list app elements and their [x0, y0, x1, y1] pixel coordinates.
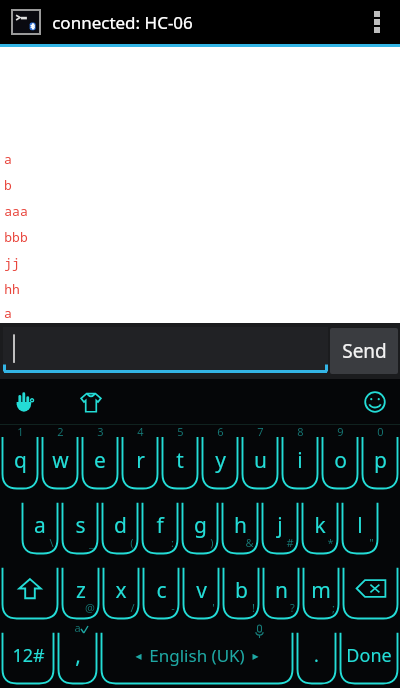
button[interactable]: v: [181, 556, 221, 621]
staticText: z: [76, 576, 86, 605]
staticText: _: [89, 535, 94, 550]
staticText: 4: [137, 424, 144, 439]
staticText: @: [85, 600, 95, 615]
button[interactable]: s: [60, 491, 100, 556]
button[interactable]: c: [141, 556, 181, 621]
button[interactable]: Space: [99, 621, 295, 686]
staticText: k: [314, 511, 326, 540]
button[interactable]: x: [101, 556, 141, 621]
staticText: v: [196, 576, 207, 605]
staticText: 8: [297, 424, 304, 439]
button[interactable]: y: [200, 425, 240, 491]
button[interactable]: b: [221, 556, 261, 621]
button[interactable]: Send: [330, 328, 398, 374]
button[interactable]: hh: [0, 276, 400, 302]
button[interactable]: a: [0, 146, 400, 172]
staticText: b: [4, 176, 12, 194]
button[interactable]: e: [80, 425, 120, 491]
button[interactable]: a: [20, 491, 60, 556]
staticText: 5: [177, 424, 184, 439]
staticText: *: [327, 535, 334, 550]
button[interactable]: Done: [338, 621, 400, 686]
staticText: -: [171, 600, 175, 615]
staticText: b: [235, 576, 248, 605]
button[interactable]: .: [295, 621, 338, 686]
staticText: English (UK): [149, 644, 245, 667]
staticText: !: [252, 600, 255, 615]
button[interactable]: w: [40, 425, 80, 491]
button[interactable]: Theme: [72, 383, 110, 421]
button[interactable]: Gesture input: [6, 383, 44, 421]
staticText: t: [176, 446, 184, 475]
button[interactable]: l: [340, 491, 380, 556]
staticText: ,: [75, 641, 81, 670]
staticText: a: [4, 304, 12, 322]
button[interactable]: Backspace: [341, 556, 400, 621]
staticText: a: [34, 511, 46, 540]
staticText: aaa: [4, 202, 28, 220]
staticText: bbb: [4, 228, 28, 246]
button[interactable]: Emoji: [356, 383, 394, 421]
button[interactable]: m: [301, 556, 341, 621]
staticText: w: [52, 446, 69, 475]
staticText: i: [297, 446, 303, 475]
staticText: r: [136, 446, 145, 475]
button[interactable]: aaa: [0, 198, 400, 224]
staticText: j: [277, 511, 283, 540]
staticText: x: [115, 576, 127, 605]
button[interactable]: jj: [0, 250, 400, 276]
button[interactable]: 12#: [0, 621, 56, 686]
button[interactable]: a: [0, 302, 400, 323]
staticText: e: [94, 446, 106, 475]
staticText: a: [74, 620, 81, 635]
staticText: /: [130, 600, 135, 615]
staticText: s: [75, 511, 86, 540]
button[interactable]: [3, 327, 328, 373]
staticText: g: [194, 511, 207, 540]
staticText: 7: [257, 424, 264, 439]
staticText: h: [234, 511, 247, 540]
button[interactable]: d: [100, 491, 140, 556]
button[interactable]: z: [60, 556, 101, 621]
staticText: (: [130, 535, 134, 550]
button[interactable]: Shift: [0, 556, 60, 621]
button[interactable]: h: [220, 491, 260, 556]
button[interactable]: g: [180, 491, 220, 556]
button[interactable]: ,: [56, 621, 99, 686]
button[interactable]: bbb: [0, 224, 400, 250]
staticText: d: [114, 511, 127, 540]
button[interactable]: b: [0, 172, 400, 198]
button[interactable]: i: [280, 425, 320, 491]
staticText: :: [171, 535, 174, 550]
staticText: hh: [4, 280, 20, 298]
button[interactable]: r: [120, 425, 160, 491]
button[interactable]: f: [140, 491, 180, 556]
staticText: c: [156, 576, 167, 605]
staticText: Done: [346, 643, 392, 668]
staticText: p: [374, 446, 387, 475]
staticText: Send: [342, 338, 387, 364]
button[interactable]: j: [260, 491, 300, 556]
button[interactable]: q: [0, 425, 40, 491]
staticText: ': [212, 600, 215, 615]
staticText: connected: HC-06: [52, 11, 193, 34]
staticText: ?: [290, 600, 295, 615]
button[interactable]: n: [261, 556, 301, 621]
button[interactable]: More options: [360, 0, 394, 44]
button[interactable]: u: [240, 425, 280, 491]
staticText: 12#: [12, 643, 45, 668]
staticText: n: [275, 576, 288, 605]
button[interactable]: o: [320, 425, 360, 491]
staticText: f: [156, 511, 164, 540]
staticText: jj: [4, 254, 20, 272]
staticText: ;: [332, 600, 335, 615]
button[interactable]: t: [160, 425, 200, 491]
staticText: q: [14, 446, 27, 475]
staticText: 1: [17, 424, 24, 439]
button[interactable]: p: [360, 425, 400, 491]
staticText: #: [286, 535, 294, 550]
button[interactable]: k: [300, 491, 340, 556]
staticText: ◂: [135, 649, 142, 663]
staticText: &: [245, 535, 254, 550]
staticText: ): [210, 535, 214, 550]
